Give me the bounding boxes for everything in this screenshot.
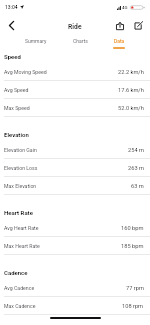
staticText: Speed <box>4 53 21 60</box>
button[interactable]: Edit <box>132 19 145 32</box>
staticText: 108 rpm <box>122 303 144 310</box>
button[interactable]: Back <box>4 18 18 32</box>
button[interactable]: Max Elevation <box>0 177 150 195</box>
button[interactable]: Elevation Loss <box>0 159 150 177</box>
staticText: Charts <box>73 38 88 44</box>
staticText: 17.6 km/h <box>118 87 144 94</box>
staticText: Summary <box>25 38 47 44</box>
staticText: Elevation <box>4 131 29 138</box>
staticText: Max Heart Rate <box>4 243 40 249</box>
staticText: 160 bpm <box>121 225 144 232</box>
staticText: 13:04 <box>5 4 18 10</box>
button[interactable]: Max Heart Rate <box>0 237 150 255</box>
staticText: Elevation Gain <box>4 147 37 153</box>
staticText: 185 bpm <box>121 243 144 250</box>
button[interactable]: Max Speed <box>0 99 150 117</box>
staticText: Avg Moving Speed <box>4 69 47 75</box>
staticText: 52.0 km/h <box>118 105 144 112</box>
staticText: 63 m <box>131 183 144 190</box>
staticText: Max Cadence <box>4 303 36 309</box>
button[interactable]: Max Cadence <box>0 297 150 315</box>
staticText: Avg Heart Rate <box>4 225 39 231</box>
staticText: Max Elevation <box>4 183 37 189</box>
button[interactable]: Summary <box>25 38 47 49</box>
button[interactable]: Data <box>113 38 125 49</box>
staticText: Avg Cadence <box>4 285 35 291</box>
button[interactable]: Charts <box>73 38 88 49</box>
staticText: 254 m <box>128 147 144 154</box>
staticText: Heart Rate <box>4 209 33 216</box>
button[interactable]: Share <box>113 19 126 32</box>
staticText: Elevation Loss <box>4 165 38 171</box>
staticText: Avg Speed <box>4 87 29 93</box>
staticText: 4G <box>122 5 128 10</box>
staticText: 263 m <box>128 165 144 172</box>
staticText: Max Speed <box>4 105 30 111</box>
button[interactable]: Avg Cadence <box>0 279 150 297</box>
staticText: 77 rpm <box>126 285 144 292</box>
button[interactable]: Elevation Gain <box>0 141 150 159</box>
button[interactable]: Avg Speed <box>0 81 150 99</box>
staticText: 22.2 km/h <box>118 69 144 76</box>
staticText: Cadence <box>4 269 28 276</box>
button[interactable]: Avg Heart Rate <box>0 219 150 237</box>
staticText: Ride <box>68 23 82 31</box>
button[interactable]: Avg Moving Speed <box>0 63 150 81</box>
staticText: Data <box>114 38 125 44</box>
